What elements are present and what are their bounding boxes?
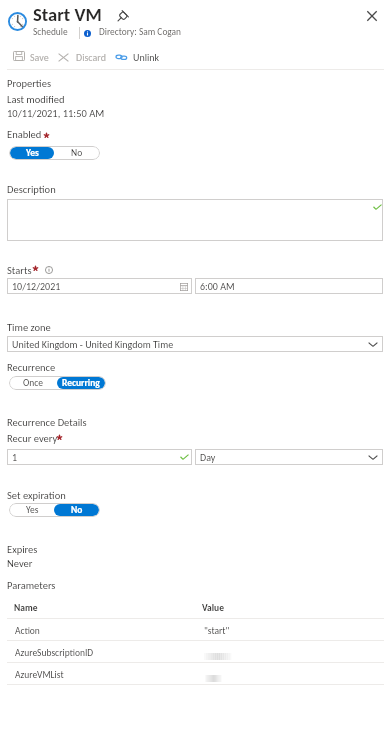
button[interactable]: 10/12/2021: [7, 278, 192, 294]
staticText: No: [71, 504, 83, 516]
staticText: Schedule: [33, 26, 68, 37]
staticText: Name: [14, 602, 38, 614]
staticText: Directory: Sam Cogan: [99, 26, 182, 37]
staticText: Time zone: [7, 321, 51, 334]
button[interactable]: Close: [362, 6, 382, 26]
staticText: Once: [23, 377, 44, 389]
button[interactable]: Discard: [56, 48, 110, 65]
button[interactable]: 1: [7, 449, 192, 465]
staticText: Day: [200, 451, 216, 463]
staticText: Expires: [7, 543, 38, 556]
button[interactable]: Pin to dashboard: [116, 11, 128, 23]
staticText: Recurrence Details: [7, 416, 87, 429]
staticText: 10/12/2021: [12, 280, 61, 292]
staticText: AzureSubscriptionID: [15, 647, 94, 659]
button[interactable]: Day: [195, 449, 383, 465]
button[interactable]: Yes: [9, 503, 100, 517]
staticText: Starts: [7, 264, 32, 277]
staticText: Recurring: [62, 377, 100, 389]
staticText: Yes: [26, 147, 39, 159]
staticText: Discard: [76, 51, 106, 63]
button[interactable]: Once: [9, 376, 106, 390]
staticText: No: [71, 147, 83, 159]
staticText: Yes: [26, 504, 39, 516]
button[interactable]: Save: [10, 48, 52, 65]
staticText: Value: [202, 602, 224, 614]
staticText: Set expiration: [7, 489, 66, 502]
staticText: Recur every: [7, 432, 58, 445]
staticText: Description: [7, 183, 56, 196]
staticText: 6:00 AM: [200, 280, 235, 292]
staticText: Last modified: [7, 93, 65, 106]
staticText: Save: [30, 51, 49, 63]
button[interactable]: 6:00 AM: [195, 278, 383, 294]
button[interactable]: AzureSubscriptionID: [7, 641, 384, 663]
button[interactable]: AzureVMList: [7, 663, 384, 685]
staticText: AzureVMList: [15, 669, 64, 681]
staticText: Recurrence: [7, 361, 56, 374]
staticText: Never: [7, 557, 33, 570]
button[interactable]: United Kingdom - United Kingdom Time: [7, 336, 383, 352]
staticText: 10/11/2021, 11:50 AM: [7, 107, 105, 120]
button[interactable]: Unlink: [113, 48, 163, 65]
staticText: Properties: [7, 77, 52, 90]
button[interactable]: Action: [7, 619, 384, 641]
button[interactable]: [7, 199, 383, 241]
staticText: Enabled: [7, 128, 42, 141]
staticText: Unlink: [133, 51, 160, 63]
staticText: "start": [204, 625, 230, 637]
staticText: Action: [15, 625, 40, 637]
staticText: Start VM: [33, 3, 102, 26]
staticText: United Kingdom - United Kingdom Time: [12, 338, 174, 350]
button[interactable]: Yes: [9, 146, 100, 160]
staticText: 1: [12, 451, 18, 463]
staticText: Parameters: [7, 579, 56, 592]
